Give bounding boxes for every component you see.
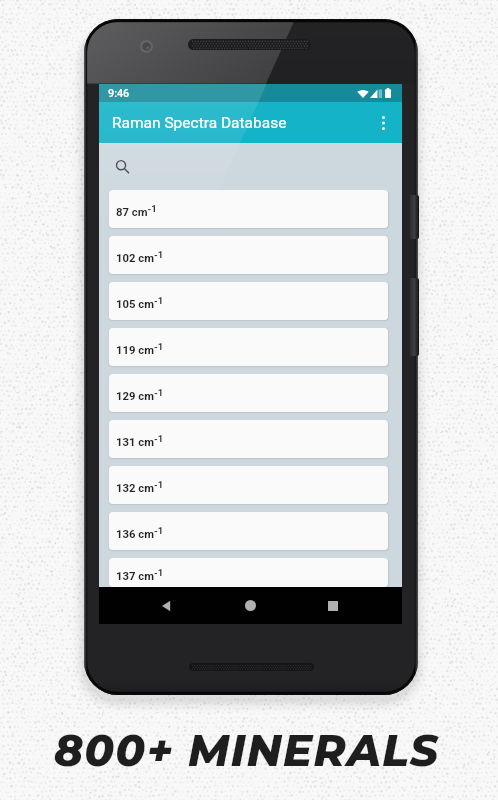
button[interactable]: 87 cm-1 <box>109 190 388 228</box>
button[interactable]: 136 cm-1 <box>109 512 388 550</box>
button[interactable]: 119 cm-1 <box>109 328 388 366</box>
staticText: 9:46 <box>108 87 130 100</box>
button[interactable]: 131 cm-1 <box>109 420 388 458</box>
staticText: Raman Spectra Database <box>112 114 287 132</box>
staticText: 129 cm-1 <box>116 387 164 403</box>
staticText: 136 cm-1 <box>116 525 164 541</box>
button[interactable]: 105 cm-1 <box>109 282 388 320</box>
button[interactable]: Back <box>146 587 186 624</box>
button[interactable]: Volume button <box>410 278 419 356</box>
button[interactable]: More options <box>366 106 400 140</box>
staticText: 800+ MINERALS <box>54 724 440 777</box>
button[interactable]: 137 cm-1 <box>109 558 388 587</box>
staticText: 132 cm-1 <box>116 479 164 495</box>
other: Search <box>116 160 130 174</box>
button[interactable]: Raman Spectra Database <box>99 102 402 143</box>
button[interactable]: 132 cm-1 <box>109 466 388 504</box>
button[interactable]: Power button <box>410 195 419 239</box>
staticText: 131 cm-1 <box>116 433 164 449</box>
staticText: 87 cm-1 <box>116 203 157 219</box>
button[interactable]: 129 cm-1 <box>109 374 388 412</box>
staticText: 102 cm-1 <box>116 249 164 265</box>
button[interactable]: Search <box>99 143 402 190</box>
staticText: 119 cm-1 <box>116 341 164 357</box>
button[interactable]: Home <box>230 587 270 624</box>
button[interactable]: Recent apps <box>313 587 353 624</box>
staticText: 105 cm-1 <box>116 295 164 311</box>
staticText: 137 cm-1 <box>116 567 164 583</box>
button[interactable]: 102 cm-1 <box>109 236 388 274</box>
